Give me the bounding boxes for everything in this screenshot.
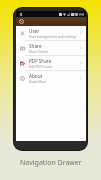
staticText: Edit PDF Create (29, 65, 53, 69)
button[interactable]: User (16, 26, 86, 40)
button[interactable]: Share (16, 41, 86, 55)
staticText: User management and settings (29, 35, 77, 39)
button[interactable]: Open navigation drawer (18, 18, 25, 25)
button[interactable]: About (16, 71, 86, 85)
staticText: Share Device (29, 50, 49, 54)
staticText: User (29, 28, 40, 34)
staticText: Navigation Drawer (20, 158, 82, 168)
staticText: Know More (29, 80, 47, 84)
staticText: About (29, 73, 43, 79)
staticText: PDF Share (29, 58, 52, 64)
staticText: Share (29, 43, 42, 49)
button[interactable]: PDF Share (16, 56, 86, 70)
